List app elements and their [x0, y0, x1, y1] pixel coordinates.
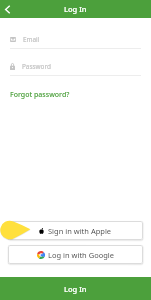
staticText: Email [23, 35, 40, 44]
button[interactable]: Back [0, 0, 14, 18]
staticText: Password [22, 62, 51, 71]
button[interactable]: Forgot password? [10, 90, 70, 100]
button[interactable]: Password [10, 59, 141, 73]
button[interactable]: Sign in with Apple [8, 221, 143, 240]
button[interactable]: Log in with Google [8, 245, 143, 264]
staticText: Log in with Google [48, 250, 114, 260]
button[interactable]: Log In [0, 277, 151, 300]
staticText: Sign in with Apple [48, 226, 112, 236]
staticText: Log In [64, 4, 87, 14]
staticText: Log In [64, 284, 87, 294]
button[interactable]: Email [10, 32, 141, 46]
